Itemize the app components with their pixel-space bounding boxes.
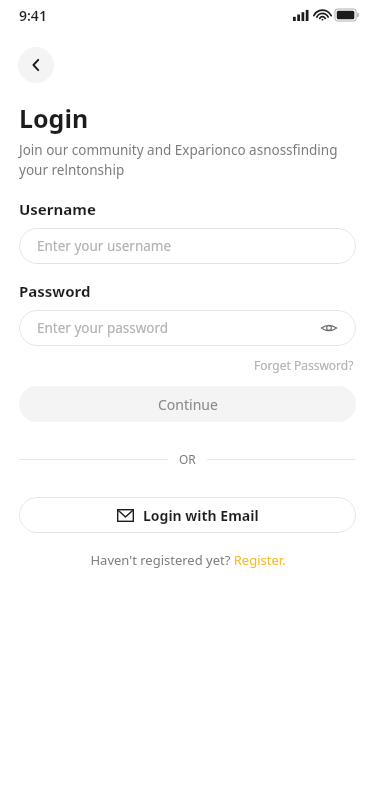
other: Show password	[320, 319, 338, 337]
staticText: Login	[19, 101, 89, 135]
staticText: Login with Email	[143, 506, 259, 525]
staticText: OR	[179, 451, 196, 467]
staticText: Password	[19, 281, 91, 301]
button[interactable]: Continue	[19, 386, 356, 422]
staticText: Username	[19, 199, 96, 219]
staticText: Enter your password	[37, 319, 169, 337]
staticText: Forget Password?	[254, 357, 354, 373]
button[interactable]: Enter your password	[19, 310, 356, 346]
button[interactable]: Enter your username	[19, 228, 356, 264]
button[interactable]: Login with Email	[19, 497, 356, 533]
staticText: Enter your username	[37, 237, 172, 255]
button[interactable]: Haven't registered yet? Register.	[90, 551, 286, 569]
button[interactable]: Forget Password?	[252, 355, 356, 375]
staticText: Continue	[158, 395, 218, 414]
staticText: Join our community and Exparionco asnoss…	[19, 141, 356, 179]
button[interactable]: Back	[18, 47, 54, 83]
staticText: 9:41	[19, 6, 47, 25]
staticText: Haven't registered yet? Register.	[90, 551, 286, 569]
